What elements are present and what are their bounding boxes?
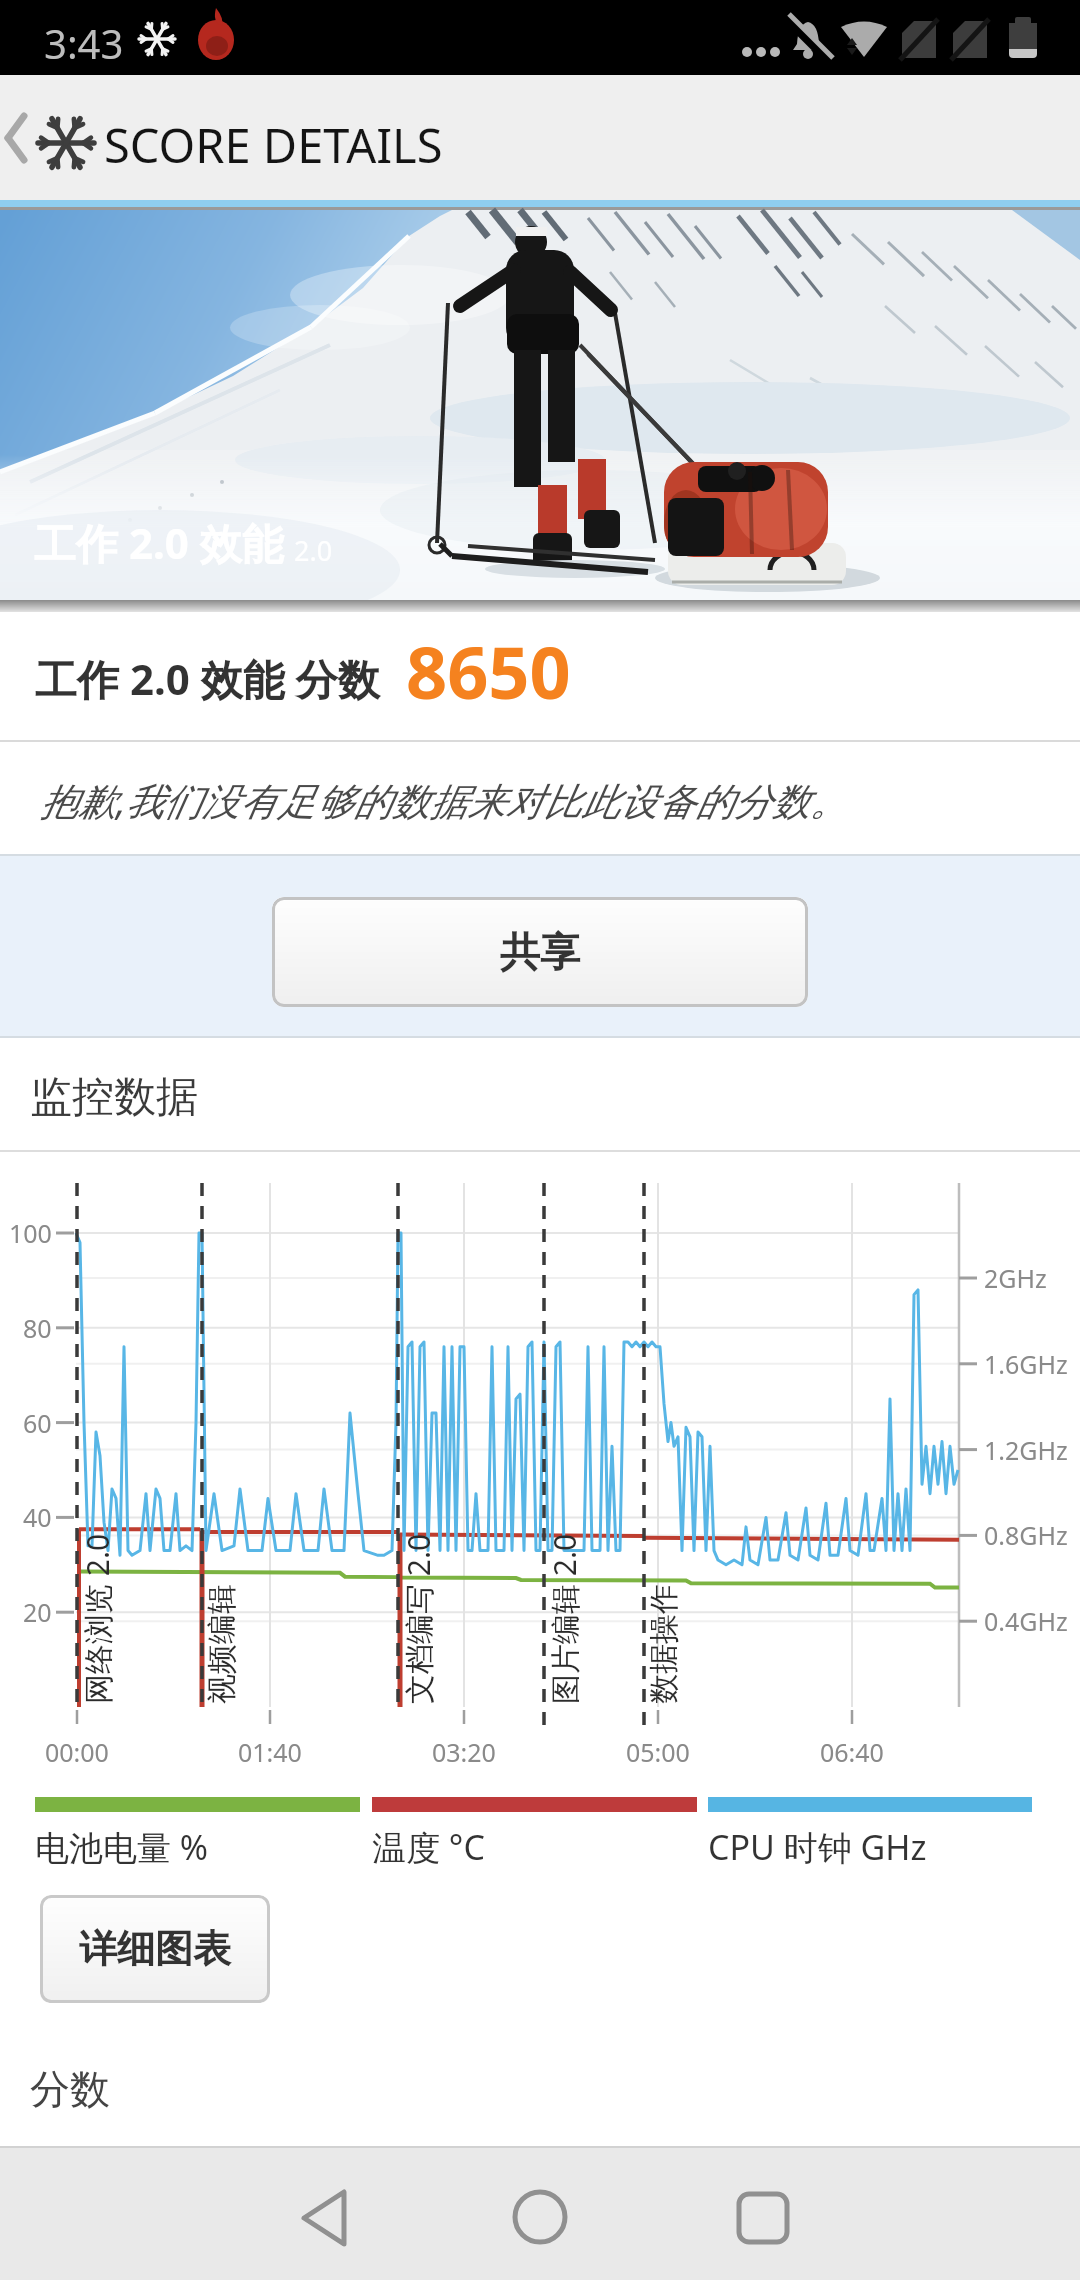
staticText: 抱歉,我们没有足够的数据来对比此设备的分数。 [40,774,848,826]
button[interactable] [723,2178,803,2258]
staticText: 3:43 [44,16,124,70]
staticText: 监控数据 [30,1071,198,1124]
staticText: 详细图表 [79,1925,231,1973]
button[interactable] [287,2178,367,2258]
staticText: 工作 2.0 效能 分数 [35,650,380,707]
button[interactable]: 详细图表 [40,1895,270,2003]
staticText: 共享 [500,927,580,977]
button[interactable] [500,2178,580,2258]
button[interactable] [0,110,36,166]
staticText: SCORE DETAILS [104,113,443,177]
button[interactable]: 共享 [272,897,808,1007]
staticText: 8650 [406,622,571,720]
staticText: 2.0 [294,532,333,569]
staticText: 工作 2.0 效能 [34,514,284,571]
staticText: 分数 [30,2064,110,2114]
